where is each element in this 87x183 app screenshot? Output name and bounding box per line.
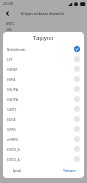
button[interactable]: eHRPD	[3, 134, 84, 144]
staticText: Erişim noktası düzenle	[21, 11, 64, 16]
button[interactable]: EVDO_B	[3, 144, 84, 154]
button[interactable]: GPRS	[3, 124, 84, 134]
button[interactable]: HSDPA	[3, 94, 84, 104]
staticText: HSPA	[7, 77, 16, 82]
staticText: 286	[6, 27, 13, 32]
staticText: Tamam	[63, 168, 76, 173]
staticText: LTE	[7, 57, 13, 62]
button[interactable]: Tamam	[61, 166, 78, 175]
button[interactable]: İptal	[11, 166, 23, 175]
staticText: Belirtilmedi	[7, 47, 26, 52]
staticText: HSPAP	[7, 67, 18, 72]
staticText: eHRPD	[7, 137, 19, 142]
staticText: Taşıyıcı	[33, 34, 54, 42]
button[interactable]: Belirtilmedi	[3, 44, 84, 54]
button[interactable]: HSPAP	[3, 64, 84, 74]
staticText: EVDO_A	[7, 157, 20, 162]
button[interactable]: EVDO_A	[3, 154, 84, 164]
staticText: MCC	[6, 21, 16, 27]
staticText: GPRS	[7, 127, 16, 132]
staticText: HSUPA	[7, 87, 18, 92]
staticText: HSDPA	[7, 97, 18, 102]
button[interactable]: UMTS	[3, 104, 84, 114]
button[interactable]: HSUPA	[3, 84, 84, 94]
staticText: EDGE	[7, 117, 16, 122]
staticText: EVDO_B	[7, 147, 20, 152]
button[interactable]: LTE	[3, 54, 84, 64]
button[interactable]: Back	[2, 8, 12, 18]
staticText: İptal	[13, 168, 21, 173]
staticText: UMTS	[7, 107, 17, 112]
button[interactable]: HSPA	[3, 74, 84, 84]
button[interactable]: EDGE	[3, 114, 84, 124]
staticText: 20:08	[3, 1, 13, 6]
